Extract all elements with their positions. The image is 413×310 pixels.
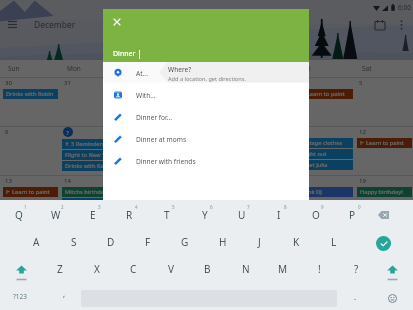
- staticText: Flight to New York: [65, 151, 114, 159]
- button[interactable]: ?: [341, 256, 372, 282]
- staticText: 13: [5, 177, 12, 185]
- button[interactable]: Z: [44, 256, 75, 282]
- button[interactable]: !: [304, 256, 335, 282]
- button[interactable]: T: [151, 202, 182, 228]
- button[interactable]: I: [263, 202, 294, 228]
- button[interactable]: Happy birthday!: [357, 187, 412, 197]
- staticText: Where?: [168, 65, 192, 74]
- button[interactable]: A: [21, 229, 52, 255]
- staticText: 8: [284, 204, 287, 210]
- staticText: 7: [247, 204, 250, 210]
- button[interactable]: Close: [107, 12, 127, 32]
- staticText: ?: [354, 262, 359, 276]
- button[interactable]: Meet Julia: [298, 160, 353, 170]
- button[interactable]: .: [344, 285, 366, 307]
- button[interactable]: Learn to paint: [357, 138, 412, 148]
- button[interactable]: Drinks with Kate: [62, 161, 117, 171]
- staticText: N: [242, 262, 250, 276]
- staticText: December: [34, 19, 76, 31]
- button[interactable]: D: [95, 229, 126, 255]
- button[interactable]: Vintage clothes market: [298, 138, 353, 148]
- button[interactable]: Backspace: [368, 202, 399, 228]
- button[interactable]: Learn to paint: [3, 187, 58, 197]
- staticText: J: [258, 235, 261, 249]
- button[interactable]: R: [114, 202, 145, 228]
- button[interactable]: V: [155, 256, 186, 282]
- button[interactable]: Shift: [381, 264, 403, 284]
- staticText: U: [238, 208, 246, 222]
- button[interactable]: X: [81, 256, 112, 282]
- button[interactable]: U: [226, 202, 257, 228]
- button[interactable]: Flight to New York: [62, 150, 117, 160]
- button[interactable]: Go to today: [369, 14, 391, 36]
- staticText: Learn to paint: [307, 90, 345, 98]
- button[interactable]: Book DJ: [298, 187, 353, 197]
- button[interactable]: J: [244, 229, 275, 255]
- button[interactable]: Shift: [10, 264, 32, 284]
- staticText: 31: [64, 79, 71, 87]
- button[interactable]: B: [192, 256, 223, 282]
- staticText: ,: [63, 288, 66, 299]
- button[interactable]: Y: [189, 202, 220, 228]
- staticText: K: [293, 235, 300, 249]
- staticText: 3 Reminders: [71, 140, 105, 148]
- button[interactable]: Dinner with friends: [103, 150, 309, 172]
- button[interactable]: Emoji: [383, 289, 401, 307]
- button[interactable]: K: [281, 229, 312, 255]
- button[interactable]: Q: [3, 202, 34, 228]
- staticText: 3: [241, 79, 245, 87]
- button[interactable]: ,: [53, 282, 75, 304]
- staticText: 0: [358, 204, 361, 210]
- button[interactable]: More options: [392, 16, 410, 34]
- button[interactable]: Drinks with Robin: [3, 89, 58, 99]
- staticText: !: [318, 262, 321, 276]
- button[interactable]: Open navigation drawer: [0, 13, 24, 36]
- button[interactable]: C: [118, 256, 149, 282]
- button[interactable]: ?123: [3, 285, 36, 307]
- staticText: Learn to paint: [12, 188, 50, 196]
- button[interactable]: Dinner for...: [103, 106, 309, 128]
- staticText: Night out: [301, 150, 327, 158]
- button[interactable]: Flight to London: [62, 198, 117, 208]
- staticText: Dinner: [113, 49, 136, 59]
- button[interactable]: E: [77, 202, 108, 228]
- button[interactable]: 3 Reminders: [62, 139, 117, 149]
- staticText: 3: [98, 204, 101, 210]
- staticText: Flight to London: [65, 199, 109, 207]
- button[interactable]: Dinner at moms: [103, 128, 309, 150]
- button[interactable]: Night out: [298, 149, 353, 159]
- staticText: S: [71, 235, 77, 249]
- button[interactable]: Mitchs birthday: [62, 187, 117, 197]
- staticText: 6: [5, 128, 9, 136]
- button[interactable]: W: [40, 202, 71, 228]
- button[interactable]: M: [267, 256, 298, 282]
- button[interactable]: Learn to paint: [298, 89, 353, 99]
- staticText: 1: [24, 204, 27, 210]
- staticText: 5: [172, 204, 175, 210]
- button[interactable]: F: [132, 229, 163, 255]
- button[interactable]: O: [300, 202, 331, 228]
- button[interactable]: L: [318, 229, 349, 255]
- staticText: Dinner with friends: [136, 157, 196, 166]
- button[interactable]: N: [230, 256, 261, 282]
- staticText: Sun: [8, 64, 20, 73]
- button[interactable]: S: [58, 229, 89, 255]
- staticText: B: [204, 262, 211, 276]
- button[interactable]: Enter: [376, 236, 391, 251]
- staticText: 30: [5, 79, 12, 87]
- staticText: P: [349, 208, 356, 222]
- staticText: A: [33, 235, 40, 249]
- button[interactable]: At...: [103, 62, 309, 84]
- button[interactable]: P: [337, 202, 368, 228]
- staticText: At...: [136, 69, 148, 78]
- button[interactable]: With...: [103, 84, 309, 106]
- button[interactable]: G: [169, 229, 200, 255]
- button[interactable]: H: [207, 229, 238, 255]
- staticText: R: [126, 208, 133, 222]
